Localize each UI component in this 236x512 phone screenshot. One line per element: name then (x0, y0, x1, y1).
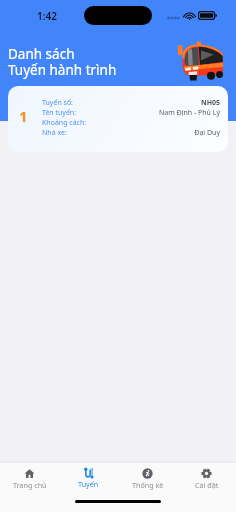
staticText: Tuyến (78, 479, 99, 489)
staticText: Khoảng cách: (42, 118, 87, 128)
button[interactable]: 1 (8, 86, 228, 152)
staticText: Thống kê (132, 480, 164, 490)
button[interactable]: Thống kê (118, 463, 177, 512)
staticText: Danh sách (8, 45, 75, 63)
staticText: Trang chủ (13, 480, 47, 490)
staticText: 1:42 (37, 9, 57, 23)
button[interactable]: Cài đặt (177, 463, 236, 512)
staticText: Nam Định - Phủ Lý (81, 108, 220, 118)
staticText: Đại Duy (71, 128, 220, 138)
staticText: NH05 (77, 98, 220, 108)
staticText: Nhà xe: (42, 128, 67, 138)
staticText: Tuyến hành trình (8, 61, 117, 79)
button[interactable]: Tuyến (59, 463, 118, 512)
staticText: Tuyến số: (42, 98, 73, 108)
staticText: Tên tuyến: (42, 108, 77, 118)
staticText: 1 (19, 106, 28, 126)
button[interactable]: Trang chủ (0, 463, 59, 512)
staticText: Cài đặt (195, 480, 219, 490)
